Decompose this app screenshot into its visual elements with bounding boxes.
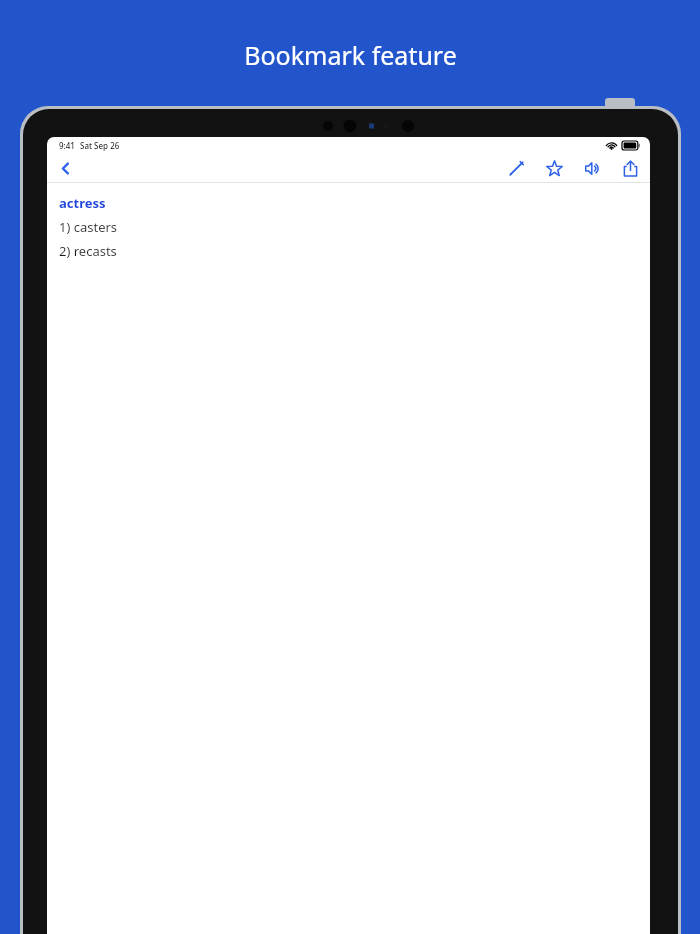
button[interactable]: Share xyxy=(618,156,642,180)
staticText: Bookmark feature xyxy=(244,38,457,72)
button[interactable]: actress xyxy=(59,194,106,212)
staticText: 9:41 xyxy=(59,140,75,151)
button[interactable]: Back xyxy=(52,155,78,181)
staticText: 2) recasts xyxy=(59,242,117,260)
staticText: Sat Sep 26 xyxy=(80,140,120,151)
button[interactable]: Pronounce xyxy=(580,156,604,180)
button[interactable]: Bookmark xyxy=(542,156,566,180)
staticText: 1) casters xyxy=(59,218,118,236)
button[interactable]: Edit xyxy=(504,156,528,180)
